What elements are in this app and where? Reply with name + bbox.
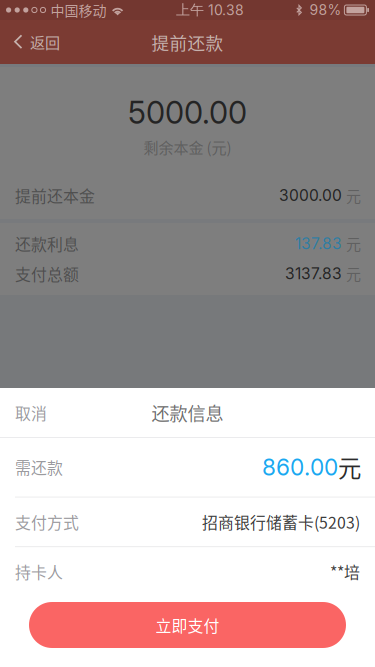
staticText: 3137.83 bbox=[285, 264, 342, 283]
staticText: 98% bbox=[309, 1, 341, 18]
button[interactable]: 取消 bbox=[0, 388, 65, 437]
staticText: 3000.00 bbox=[279, 186, 342, 205]
staticText: 5000.00 bbox=[128, 94, 247, 131]
staticText: 取消 bbox=[15, 401, 47, 424]
staticText: 元 bbox=[346, 233, 361, 254]
staticText: 招商银行储蓄卡(5203) bbox=[202, 510, 360, 533]
button[interactable]: 返回 bbox=[0, 20, 70, 64]
staticText: 还款利息 bbox=[15, 232, 79, 255]
staticText: 860.00 bbox=[262, 453, 338, 481]
staticText: 还款信息 bbox=[151, 399, 223, 426]
staticText: 提前还本金 bbox=[15, 184, 95, 207]
button[interactable]: 支付方式 bbox=[0, 497, 375, 546]
button[interactable]: 立即支付 bbox=[29, 602, 346, 648]
staticText: 剩余本金 (元) bbox=[143, 136, 231, 158]
staticText: 需还款 bbox=[15, 456, 63, 479]
staticText: 支付总额 bbox=[15, 262, 79, 285]
staticText: 返回 bbox=[30, 31, 60, 53]
staticText: 元 bbox=[346, 263, 361, 284]
staticText: 持卡人 bbox=[15, 560, 63, 583]
staticText: 元 bbox=[338, 450, 361, 484]
staticText: **培 bbox=[330, 560, 360, 583]
staticText: 137.83 bbox=[295, 234, 342, 253]
staticText: 中国移动 bbox=[51, 0, 107, 20]
staticText: 支付方式 bbox=[15, 510, 79, 533]
staticText: 元 bbox=[346, 184, 361, 206]
staticText: 提前还款 bbox=[151, 29, 223, 55]
staticText: 立即支付 bbox=[155, 613, 219, 636]
staticText: 上午 10.38 bbox=[176, 1, 244, 19]
